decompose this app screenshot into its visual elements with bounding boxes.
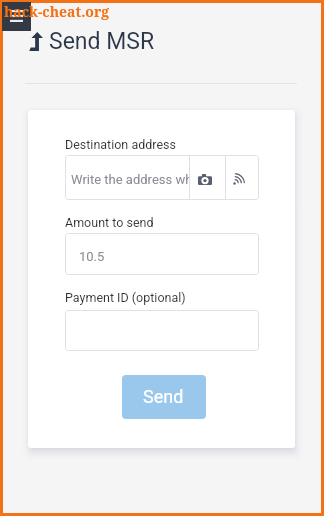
button[interactable]: Open navigation menu bbox=[2, 2, 31, 31]
staticText: Send MSR bbox=[49, 28, 155, 55]
staticText: Write the address where bbox=[71, 172, 189, 187]
button[interactable]: Scan QR code bbox=[190, 155, 225, 200]
staticText: Send bbox=[143, 386, 184, 407]
button[interactable]: 10.5 bbox=[65, 233, 259, 275]
button[interactable]: Send bbox=[122, 375, 206, 419]
staticText: hack-cheat.org bbox=[4, 2, 110, 21]
button[interactable]: Write the address where bbox=[65, 155, 189, 200]
button[interactable] bbox=[65, 310, 259, 351]
staticText: Payment ID (optional) bbox=[65, 290, 186, 305]
button[interactable]: Read NFC tag bbox=[226, 155, 259, 200]
staticText: Destination address bbox=[65, 137, 176, 152]
staticText: 10.5 bbox=[79, 249, 105, 264]
staticText: Amount to send bbox=[65, 215, 154, 230]
